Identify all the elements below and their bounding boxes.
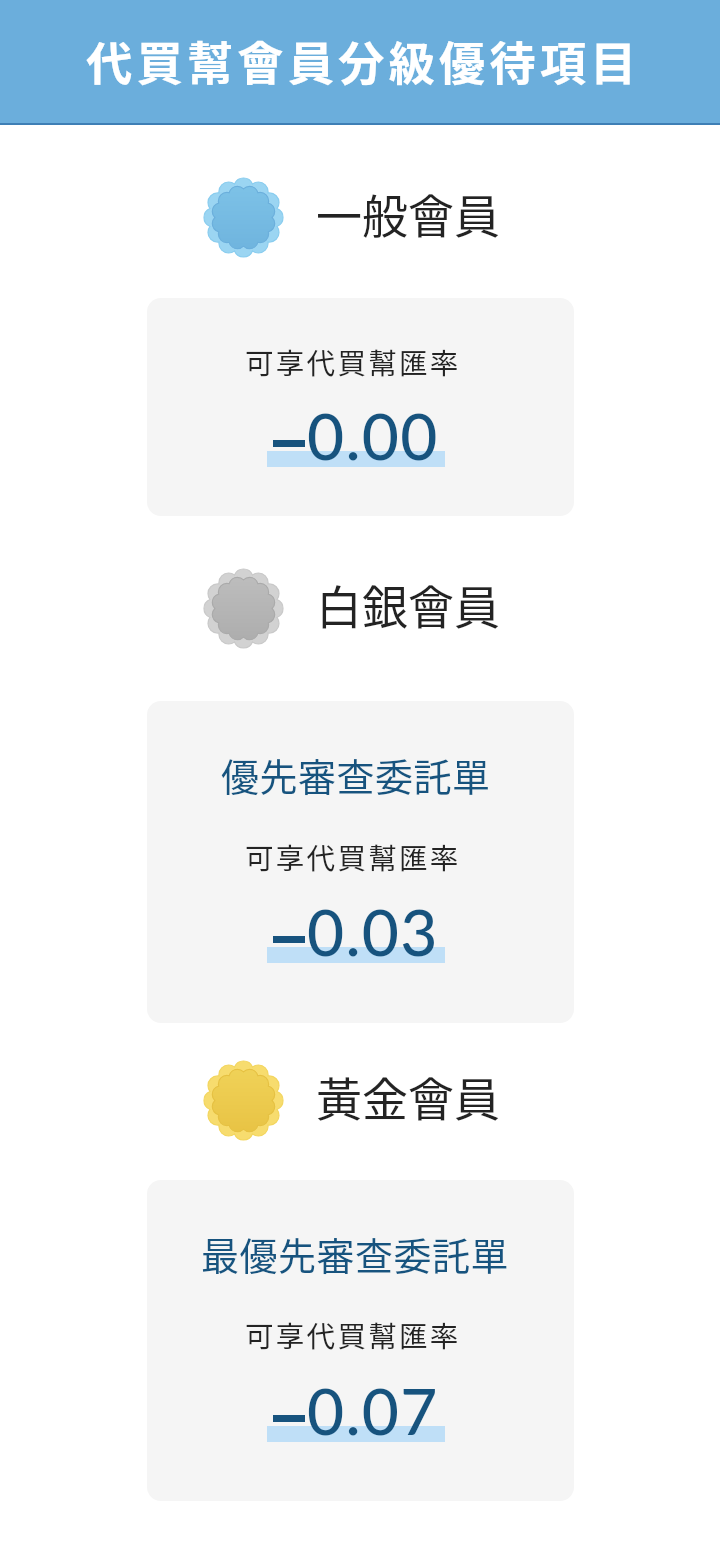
staticText: 0.03 bbox=[307, 893, 439, 970]
staticText: 可享代買幫匯率 bbox=[245, 836, 461, 877]
button[interactable]: Silver member tier bbox=[0, 569, 712, 648]
staticText: 最優先審查委託單 bbox=[201, 1226, 510, 1281]
staticText: 優先審查委託單 bbox=[221, 747, 491, 802]
button[interactable]: 優先審查委託單 bbox=[147, 701, 574, 1023]
staticText: 黃金會員 bbox=[316, 1063, 500, 1130]
staticText: 一般會員 bbox=[316, 180, 500, 247]
staticText: 可享代買幫匯率 bbox=[245, 1314, 461, 1355]
staticText: 代買幫會員分級優待項目 bbox=[86, 27, 641, 94]
staticText: 0.07 bbox=[307, 1372, 439, 1449]
button[interactable]: 最優先審查委託單 bbox=[147, 1180, 574, 1501]
staticText: 白銀會員 bbox=[316, 571, 500, 638]
button[interactable]: General member tier bbox=[0, 178, 712, 257]
staticText: 可享代買幫匯率 bbox=[245, 341, 461, 382]
button[interactable]: 可享代買幫匯率 bbox=[147, 298, 574, 516]
button[interactable]: Gold member tier bbox=[0, 1061, 712, 1140]
staticText: 0.00 bbox=[307, 397, 439, 474]
